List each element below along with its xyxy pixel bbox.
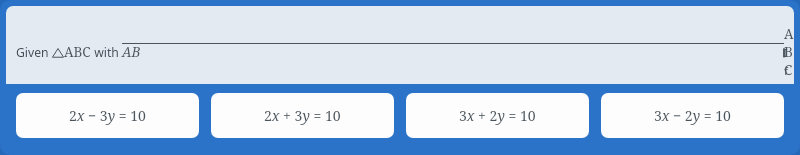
staticText: AB [122, 43, 141, 61]
staticText: 2x − 3y = 10 [69, 106, 146, 125]
button[interactable]: 3x + 2y = 10 [406, 93, 589, 138]
staticText: 3x − 2y = 10 [654, 106, 731, 125]
button[interactable]: 2x − 3y = 10 [16, 93, 199, 138]
staticText: with [91, 44, 122, 61]
staticText: ABC [64, 43, 91, 61]
staticText: 2x + 3y = 10 [264, 106, 341, 125]
button[interactable]: 3x − 2y = 10 [601, 93, 784, 138]
button[interactable]: 2x + 3y = 10 [211, 93, 394, 138]
staticText: 3x + 2y = 10 [459, 106, 536, 125]
staticText: Given [16, 44, 52, 61]
